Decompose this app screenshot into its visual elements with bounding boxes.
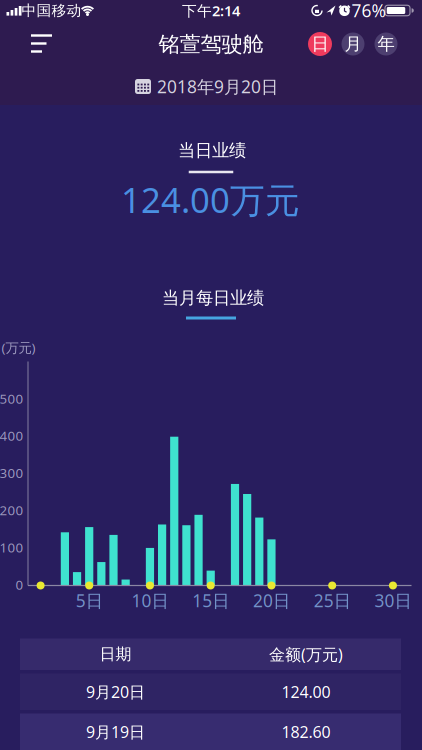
staticText: 铭萱驾驶舱 bbox=[158, 31, 263, 58]
staticText: (万元) bbox=[1, 339, 35, 356]
staticText: 9月20日 bbox=[86, 681, 145, 702]
staticText: 中国移动 bbox=[21, 1, 81, 19]
staticText: 10日 bbox=[131, 589, 168, 612]
staticText: 76% bbox=[351, 0, 385, 22]
staticText: 30日 bbox=[374, 589, 411, 612]
staticText: 0 bbox=[15, 576, 23, 593]
staticText: 124.00万元 bbox=[121, 176, 300, 222]
staticText: 200 bbox=[0, 501, 23, 519]
button[interactable] bbox=[31, 34, 52, 53]
staticText: 当日业绩 bbox=[178, 140, 246, 161]
button[interactable]: 9月20日 bbox=[20, 673, 401, 710]
staticText: 500 bbox=[0, 390, 23, 407]
staticText: 25日 bbox=[314, 589, 351, 612]
staticText: 日期 bbox=[99, 644, 131, 664]
staticText: 日 bbox=[311, 33, 328, 55]
button[interactable]: 年 bbox=[374, 32, 397, 55]
staticText: 2018年9月20日 bbox=[157, 75, 278, 98]
button[interactable]: 9月19日 bbox=[20, 713, 401, 750]
staticText: 100 bbox=[0, 538, 23, 556]
staticText: 400 bbox=[0, 427, 23, 444]
staticText: 182.60 bbox=[281, 721, 330, 742]
button[interactable]: 日 bbox=[308, 32, 332, 56]
button[interactable]: 2018年9月20日 bbox=[135, 75, 278, 98]
staticText: 300 bbox=[0, 464, 23, 482]
staticText: 金额(万元) bbox=[269, 644, 343, 665]
staticText: 下午2:14 bbox=[182, 1, 240, 20]
staticText: 15日 bbox=[192, 589, 229, 612]
staticText: 当月每日业绩 bbox=[162, 287, 264, 309]
button[interactable]: 月 bbox=[341, 32, 364, 55]
staticText: 月 bbox=[344, 33, 361, 55]
staticText: 5日 bbox=[76, 589, 103, 612]
staticText: 年 bbox=[377, 33, 394, 55]
staticText: 20日 bbox=[253, 589, 290, 612]
staticText: 124.00 bbox=[281, 681, 330, 702]
staticText: 9月19日 bbox=[86, 721, 145, 742]
